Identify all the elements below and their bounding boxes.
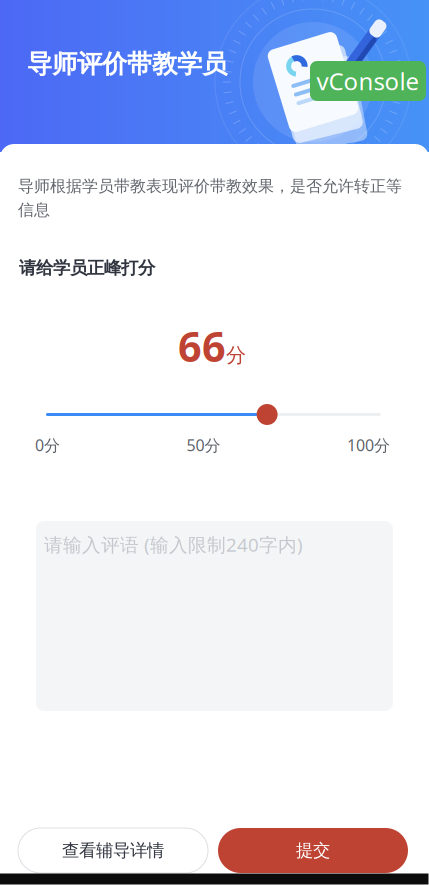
button[interactable]: vConsole — [310, 61, 426, 101]
staticText: 分 — [226, 343, 246, 368]
staticText: 100分 — [347, 434, 390, 456]
staticText: 提交 — [296, 840, 330, 861]
button[interactable]: 提交 — [218, 828, 408, 873]
staticText: 50分 — [186, 434, 220, 456]
button[interactable]: 查看辅导详情 — [18, 828, 208, 873]
staticText: 查看辅导详情 — [62, 840, 164, 861]
staticText: 导师根据学员带教表现评价带教效果，是否允许转正等信息 — [18, 176, 402, 220]
staticText: 导师评价带教学员 — [27, 48, 227, 79]
staticText: 请给学员正峰打分 — [19, 257, 155, 279]
staticText: vConsole — [316, 65, 419, 97]
staticText: 66 — [178, 319, 226, 373]
staticText: 请输入评语 (输入限制240字内) — [44, 532, 303, 557]
staticText: 0分 — [35, 434, 60, 456]
